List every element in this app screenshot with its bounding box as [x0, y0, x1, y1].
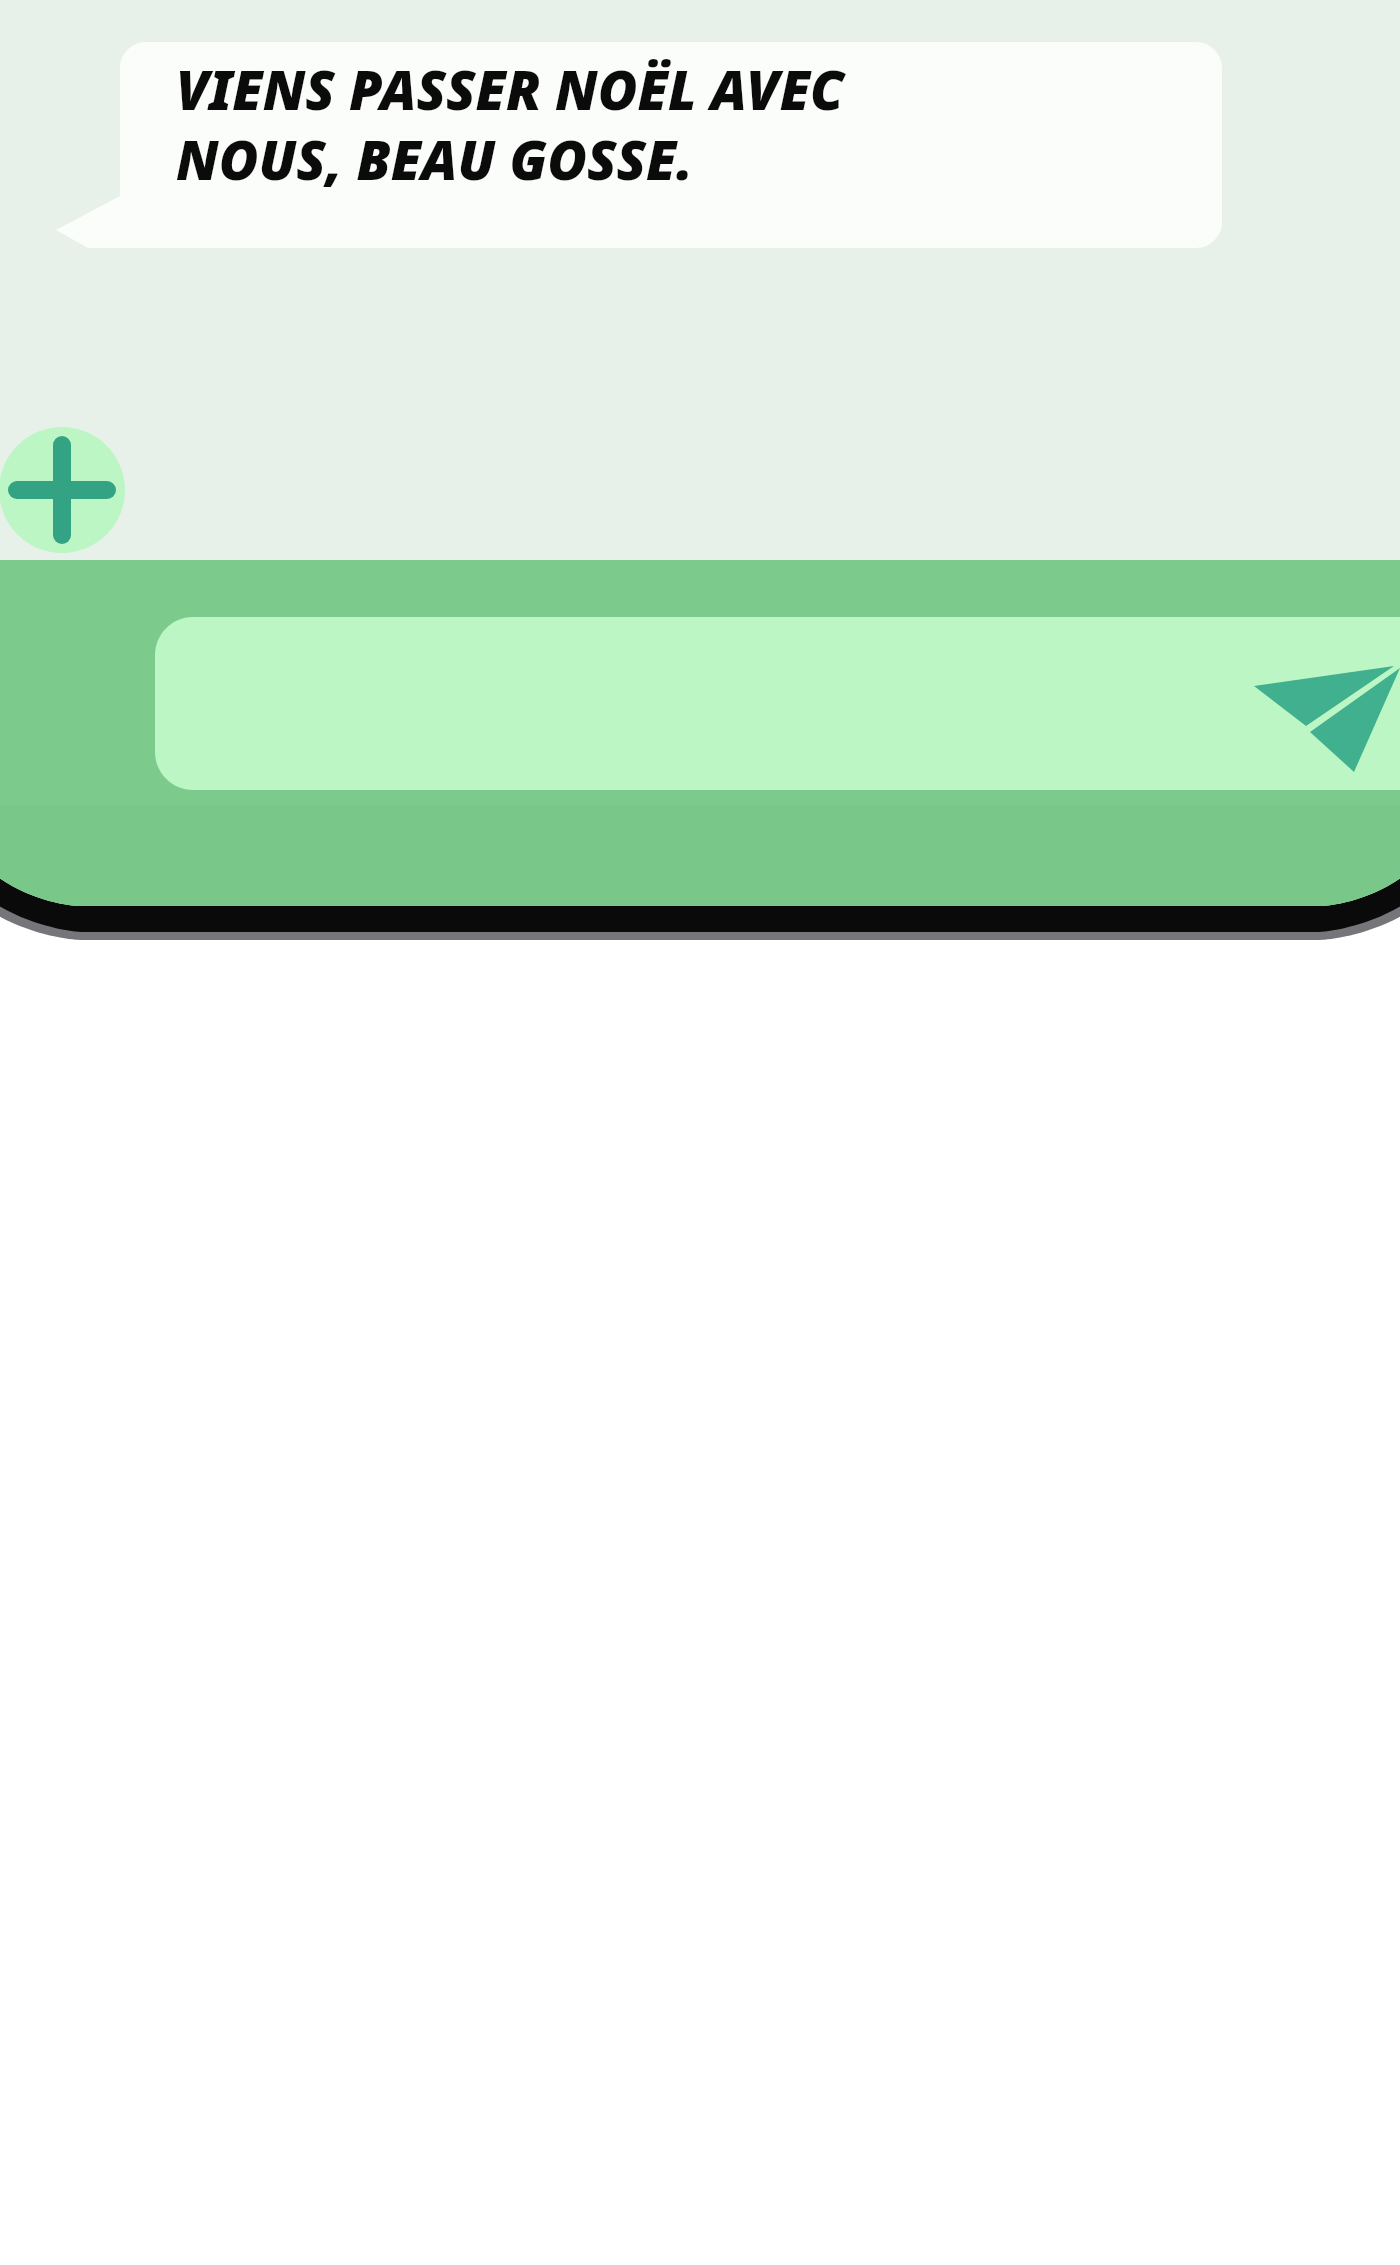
button[interactable]: Add attachment: [0, 427, 126, 553]
staticText: VIENS PASSER NOËL AVEC NOUS, BEAU GOSSE.: [176, 52, 1116, 222]
button[interactable]: Type a message: [155, 617, 1230, 790]
button[interactable]: Send: [1240, 622, 1400, 782]
